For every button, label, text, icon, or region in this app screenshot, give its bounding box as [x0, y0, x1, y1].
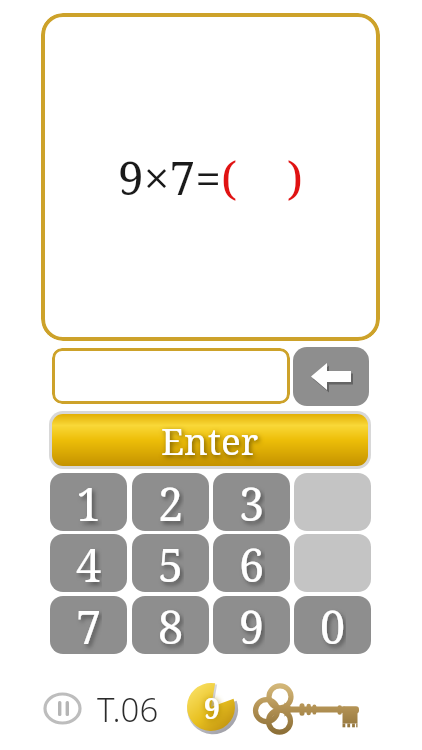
button[interactable] [52, 348, 290, 404]
staticText: 9 [239, 596, 265, 654]
button[interactable]: Enter [49, 411, 371, 469]
staticText: 7 [76, 596, 102, 654]
staticText: 4 [76, 534, 102, 592]
button[interactable]: 6 [213, 534, 290, 592]
button[interactable] [43, 690, 83, 726]
button[interactable]: 0 [294, 596, 371, 654]
button[interactable]: 2 [132, 473, 209, 531]
button[interactable] [294, 473, 371, 531]
button[interactable]: 8 [132, 596, 209, 654]
staticText: ( [221, 146, 237, 209]
button[interactable]: 3 [213, 473, 290, 531]
button[interactable]: 9 [213, 596, 290, 654]
button[interactable] [252, 686, 368, 732]
staticText: 0 [320, 596, 346, 654]
staticText: 9×7= [118, 146, 221, 209]
staticText: 3 [239, 473, 265, 531]
button[interactable]: 1 [50, 473, 127, 531]
staticText: 6 [239, 534, 265, 592]
button[interactable] [293, 347, 369, 406]
staticText: 1 [76, 473, 102, 531]
staticText: 9 [204, 689, 220, 727]
staticText: Enter [161, 415, 259, 465]
button[interactable]: 4 [50, 534, 127, 592]
button[interactable]: 5 [132, 534, 209, 592]
staticText: ) [287, 146, 303, 209]
button[interactable]: 7 [50, 596, 127, 654]
staticText: 8 [158, 596, 184, 654]
button[interactable]: 9 [185, 681, 239, 735]
staticText: 5 [158, 534, 184, 592]
staticText: T.06 [97, 687, 159, 732]
button[interactable] [294, 534, 371, 592]
staticText: 2 [158, 473, 184, 531]
